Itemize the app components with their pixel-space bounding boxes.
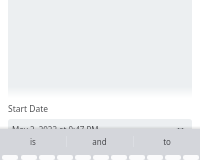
button[interactable]: May 2, 2022 at 9:47 PM — [8, 119, 192, 139]
staticText: May 2, 2022 at 9:47 PM — [12, 124, 99, 135]
button[interactable]: Key — [39, 155, 55, 160]
button[interactable]: Key — [165, 155, 181, 160]
button[interactable]: is — [0, 129, 66, 155]
button[interactable]: Key — [21, 155, 37, 160]
staticText: to — [163, 136, 171, 147]
staticText: and — [92, 136, 107, 147]
button[interactable]: Key — [57, 155, 73, 160]
button[interactable]: Key — [183, 155, 199, 160]
button[interactable]: Key — [75, 155, 91, 160]
staticText: is — [30, 136, 36, 147]
button[interactable]: Key — [2, 155, 18, 160]
button[interactable]: Key — [147, 155, 163, 160]
button[interactable]: and — [66, 129, 133, 155]
button[interactable]: Key — [93, 155, 109, 160]
button[interactable]: Pick date — [175, 127, 186, 138]
button[interactable]: Key — [129, 155, 145, 160]
button[interactable]: to — [133, 129, 200, 155]
button[interactable]: Key — [111, 155, 127, 160]
staticText: Start Date — [8, 103, 49, 115]
